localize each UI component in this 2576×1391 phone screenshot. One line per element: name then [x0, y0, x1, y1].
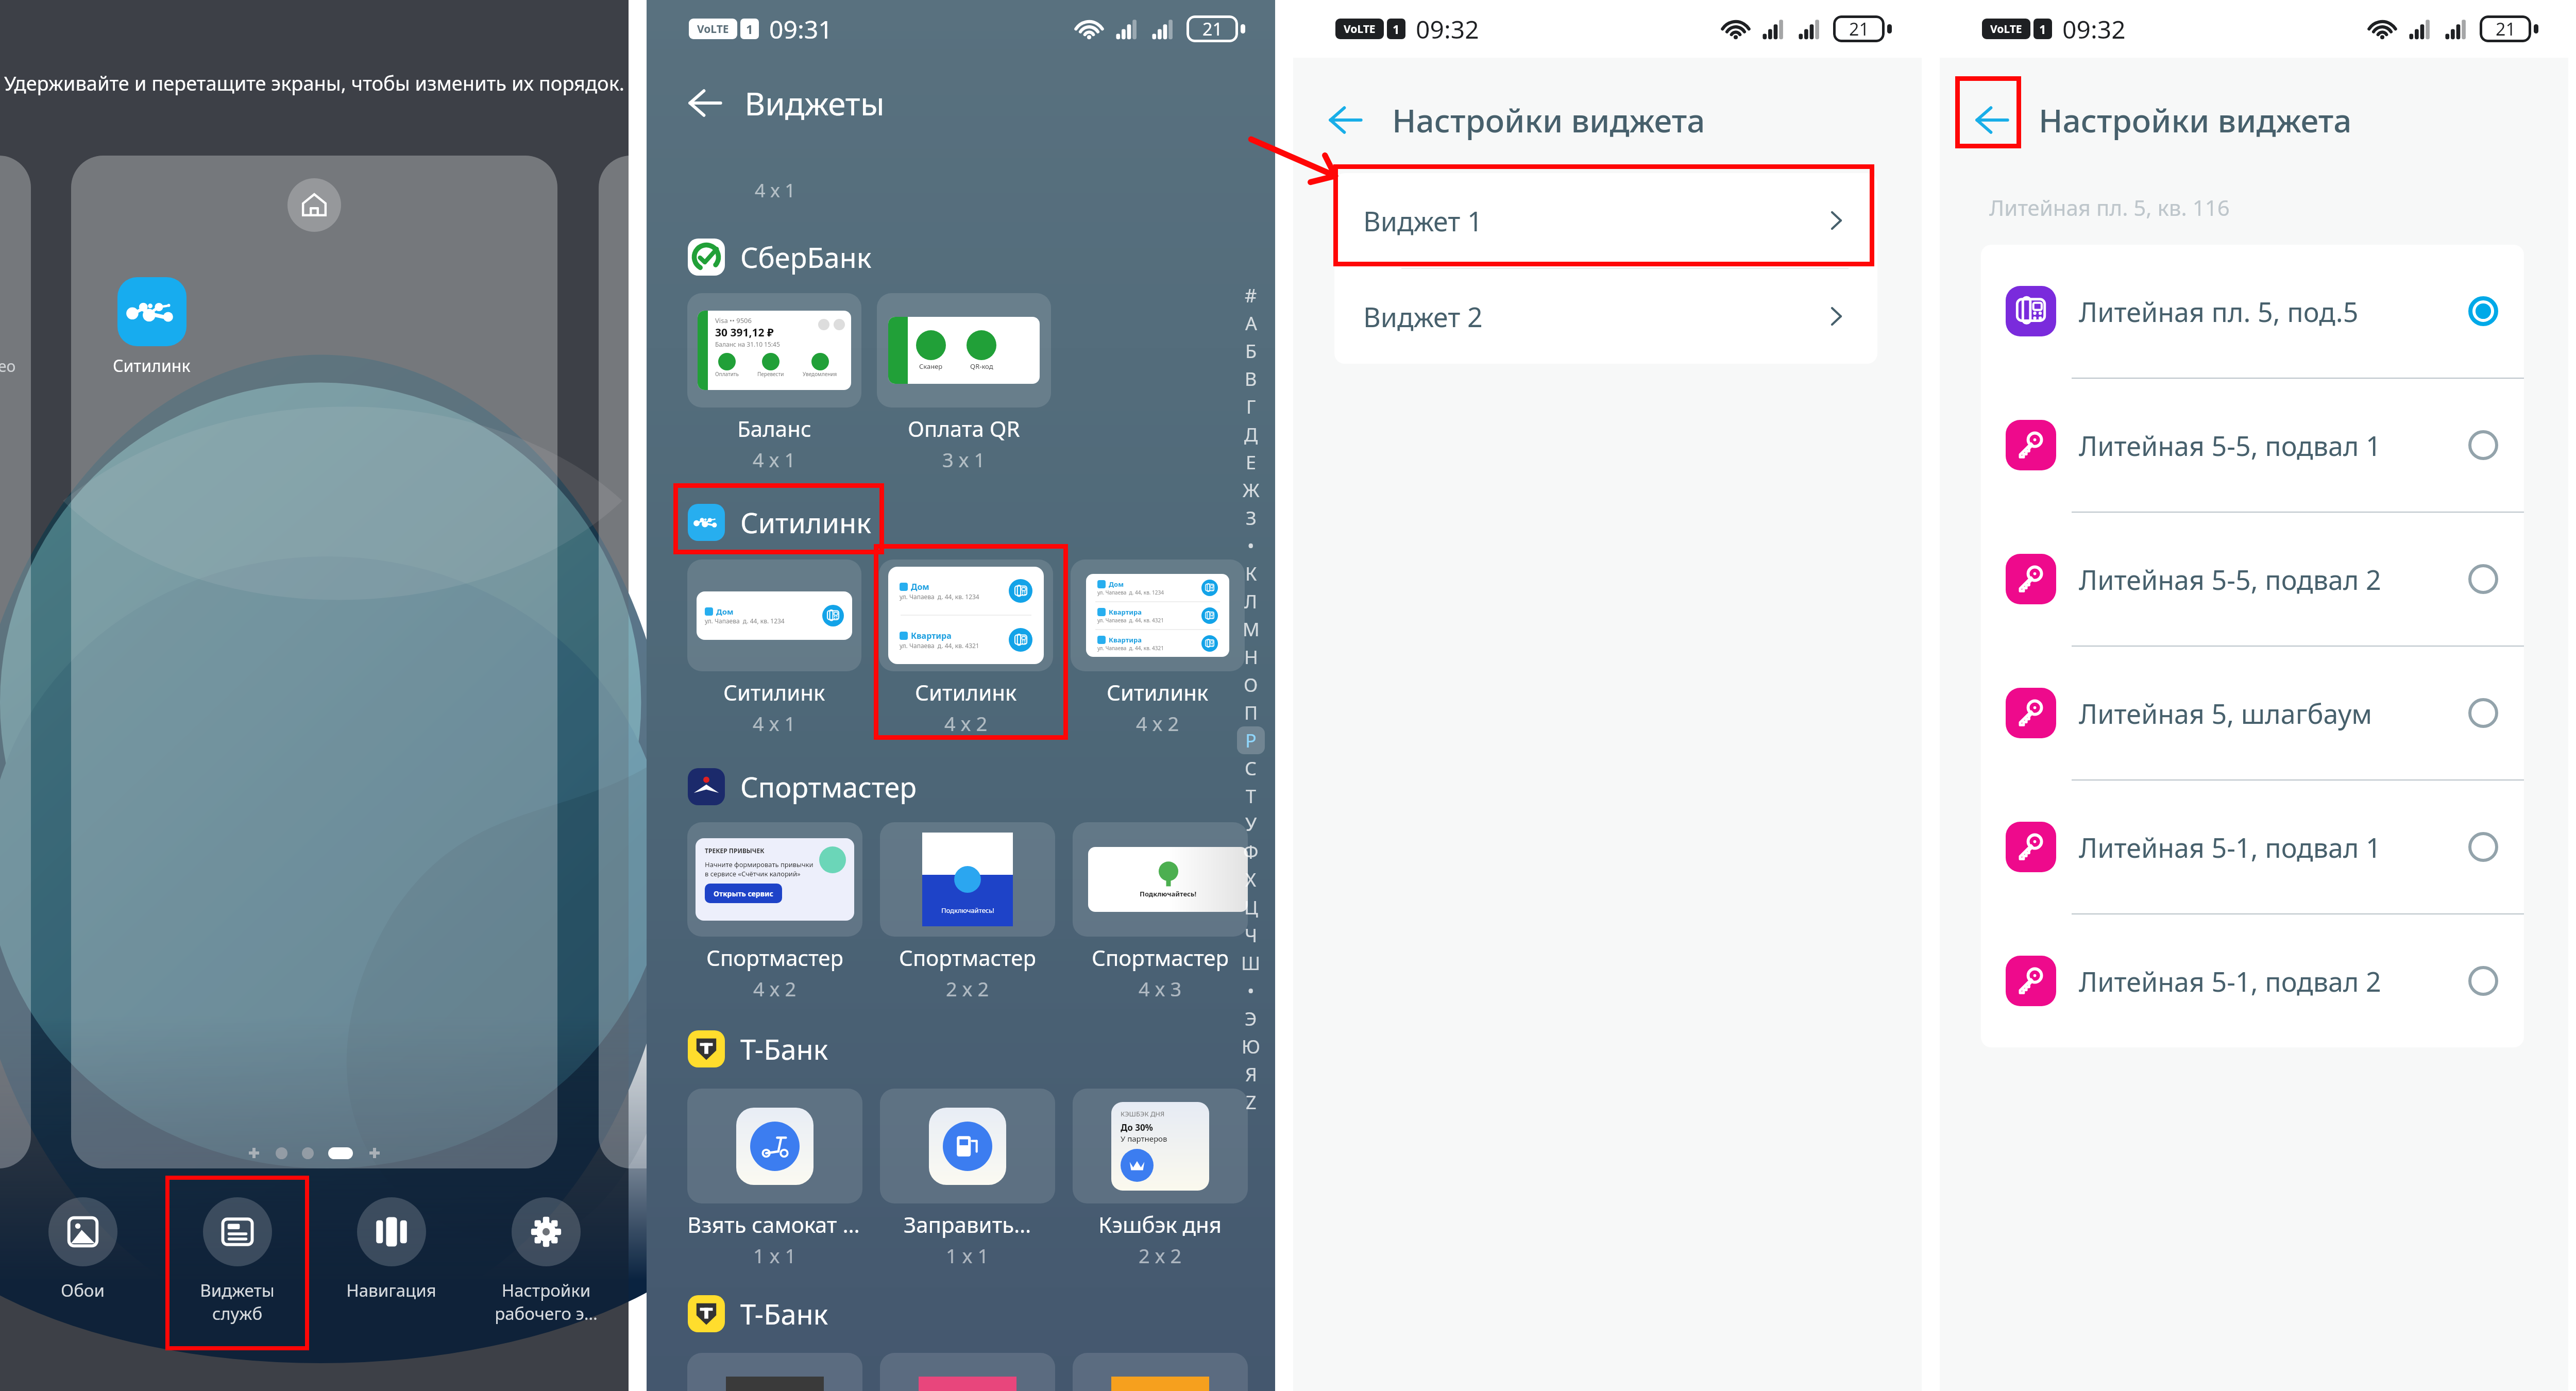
button[interactable]: Литейная 5, шлагбаум — [1981, 647, 2524, 781]
staticText: 4 x 1 — [753, 446, 796, 473]
staticText: 4 x 2 — [944, 710, 988, 737]
staticText: Виджет 1 — [1363, 202, 1483, 239]
staticText: О — [1244, 672, 1258, 698]
button[interactable]: Дом — [1071, 559, 1245, 737]
staticText: Ф — [1243, 839, 1259, 864]
staticText: Б — [1245, 338, 1257, 364]
staticText: У — [1245, 811, 1257, 837]
staticText: СберБанк — [740, 238, 872, 276]
staticText: Баланс на 31.10 15:45 — [715, 340, 780, 348]
staticText: QR-код — [970, 362, 993, 371]
staticText: 09:32 — [1416, 12, 1479, 46]
staticText: До 30% — [1121, 1122, 1153, 1133]
staticText: Дом — [1109, 580, 1124, 589]
staticText: Подключайтесь! — [941, 906, 994, 915]
staticText: ул. Чапаева д. 44, кв. 1234 — [900, 592, 979, 601]
button[interactable]: Т-Банк — [688, 1030, 1275, 1068]
button[interactable]: Литейная 5-5, подвал 2 — [1981, 513, 2524, 647]
staticText: Литейная 5, шлагбаум — [2079, 695, 2372, 732]
staticText: Уведомления — [803, 370, 837, 378]
button[interactable]: Литейная 5-1, подвал 2 — [1981, 914, 2524, 1047]
button[interactable]: Навигация — [319, 1176, 463, 1302]
staticText: 21 — [2496, 17, 2516, 41]
button[interactable]: Взять самокат с… — [687, 1089, 862, 1269]
button[interactable]: Заправить… — [880, 1089, 1055, 1269]
staticText: Заправить… — [904, 1210, 1031, 1239]
staticText: У партнеров — [1121, 1133, 1167, 1144]
staticText: 4 x 2 — [753, 975, 796, 1002]
staticText: Visa •• 9506 — [715, 316, 752, 325]
button[interactable]: Visa •• 9506 — [687, 293, 861, 473]
staticText: С — [1245, 756, 1257, 781]
button[interactable]: Set as home screen — [287, 178, 341, 232]
button[interactable]: Сканер — [877, 293, 1051, 473]
button[interactable]: Т-Банк — [688, 1295, 1275, 1333]
button[interactable]: Back — [1964, 92, 2020, 148]
button[interactable]: Виджеты служб — [165, 1176, 309, 1325]
button[interactable]: Дом — [879, 559, 1053, 737]
button[interactable]: Настройки рабочего э… — [474, 1176, 618, 1325]
button[interactable]: Литейная 5-5, подвал 1 — [1981, 379, 2524, 513]
button[interactable]: Back — [1318, 92, 1374, 148]
staticText: Ситилинк — [740, 503, 871, 541]
button[interactable]: Подключайтесь! — [1073, 822, 1248, 1002]
staticText: Ситилинк — [113, 354, 191, 377]
staticText: Д — [1244, 422, 1258, 447]
staticText: Обои — [61, 1279, 105, 1302]
staticText: А — [1245, 311, 1257, 336]
staticText: Н — [1244, 644, 1258, 670]
staticText: # — [1245, 283, 1257, 308]
staticText: Литейная 5-5, подвал 1 — [2079, 427, 2381, 464]
staticText: Я — [1245, 1062, 1257, 1087]
staticText: Спортмастер — [740, 768, 917, 806]
button[interactable]: Citilink — [117, 277, 187, 346]
staticText: Настройки рабочего э… — [495, 1279, 598, 1325]
staticText: В — [1245, 366, 1257, 392]
staticText: Ч — [1245, 923, 1258, 948]
staticText: Ц — [1244, 895, 1258, 920]
staticText: 1 — [746, 21, 753, 38]
staticText: 3 x 1 — [942, 446, 986, 473]
button[interactable]: Дом — [687, 559, 861, 737]
staticText: К — [1245, 561, 1257, 586]
staticText: Литейная пл. 5, под.5 — [2079, 293, 2359, 330]
staticText: VoLTE — [1990, 22, 2022, 37]
button[interactable]: Подключайтесь! — [880, 822, 1055, 1002]
staticText: М — [1243, 617, 1260, 642]
button[interactable]: Back — [681, 78, 730, 128]
button[interactable]: Литейная 5-1, подвал 1 — [1981, 781, 2524, 914]
staticText: Z — [1246, 1090, 1257, 1115]
staticText: Сканер — [919, 362, 943, 371]
staticText: Спортмастер — [899, 943, 1037, 972]
staticText: 4 x 1 — [753, 710, 796, 737]
staticText: 4 x 3 — [1139, 975, 1182, 1002]
staticText: Литейная 5-1, подвал 1 — [2079, 829, 2381, 866]
staticText: Ш — [1241, 951, 1261, 976]
button[interactable]: Ситилинк — [688, 503, 1275, 541]
button[interactable]: Виджет 1 — [1334, 173, 1877, 268]
staticText: Дом — [911, 581, 929, 592]
staticText: ул. Чапаева д. 44, кв. 4321 — [1097, 644, 1164, 652]
staticText: 2 x 2 — [946, 975, 989, 1002]
button[interactable]: Спортмастер — [688, 768, 1275, 806]
button[interactable]: Виджет 2 — [1334, 269, 1877, 364]
staticText: Виджет 2 — [1363, 298, 1483, 335]
staticText: ТРЕКЕР ПРИВЫЧЕК — [705, 846, 765, 855]
staticText: 21 — [1202, 17, 1223, 41]
staticText: ео — [0, 355, 16, 377]
staticText: Спортмастер — [706, 943, 844, 972]
button[interactable]: КЭШБЭК ДНЯ — [1073, 1089, 1248, 1269]
button[interactable]: СберБанк — [688, 238, 1275, 276]
staticText: Квартира — [1109, 635, 1142, 644]
button[interactable]: ТРЕКЕР ПРИВЫЧЕК — [687, 822, 862, 1002]
staticText: Оплата QR — [908, 414, 1020, 443]
staticText: Л — [1244, 589, 1258, 614]
staticText: Настройки виджета — [1392, 98, 1705, 142]
staticText: • — [1247, 533, 1255, 558]
staticText: Открыть сервис — [714, 889, 773, 898]
staticText: Р — [1245, 728, 1257, 753]
button[interactable]: Обои — [11, 1176, 155, 1302]
staticText: 30 391,12 ₽ — [715, 325, 774, 340]
button[interactable]: Литейная пл. 5, под.5 — [1981, 245, 2524, 379]
staticText: 1 x 1 — [753, 1242, 796, 1269]
